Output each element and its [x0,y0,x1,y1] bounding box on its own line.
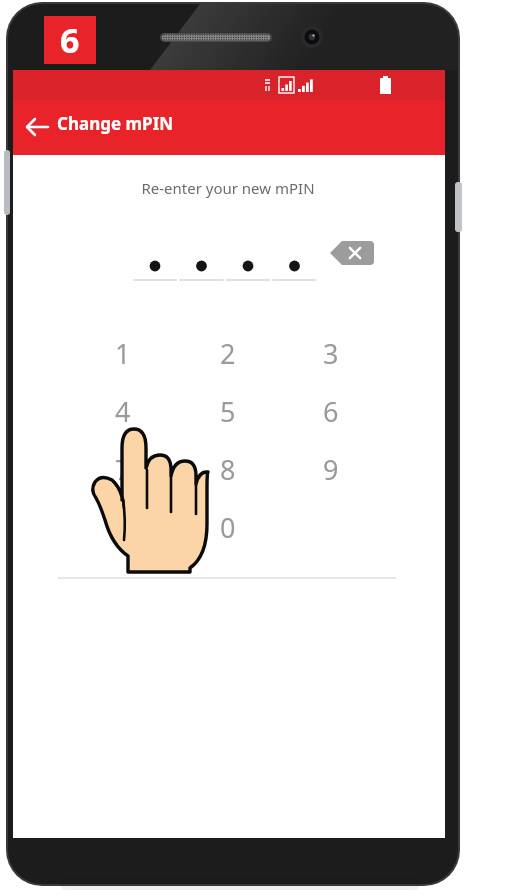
staticText: 1 [115,335,131,372]
button[interactable]: 6 [285,385,377,437]
button[interactable]: 2 [182,327,274,379]
button[interactable]: 7 [77,443,169,495]
staticText: 3 [323,335,339,372]
button[interactable]: Backspace [328,238,376,268]
button[interactable]: 1 [77,327,169,379]
button[interactable]: 5 [182,385,274,437]
staticText: Re-enter your new mPIN [60,178,396,204]
staticText: Change mPIN [57,112,174,135]
staticText: 0 [220,509,236,546]
button[interactable]: 4 [77,385,169,437]
button[interactable]: 0 [182,501,274,553]
staticText: 5 [220,393,236,430]
staticText: 6 [60,17,80,63]
staticText: 7 [115,451,131,488]
staticText: 8 [220,451,236,488]
staticText: 2 [220,335,236,372]
staticText: 6 [323,393,339,430]
staticText: 4 [115,393,131,430]
staticText: 9 [323,451,339,488]
button[interactable]: Back [22,108,62,148]
button[interactable]: 3 [285,327,377,379]
button[interactable]: 9 [285,443,377,495]
button[interactable]: 8 [182,443,274,495]
